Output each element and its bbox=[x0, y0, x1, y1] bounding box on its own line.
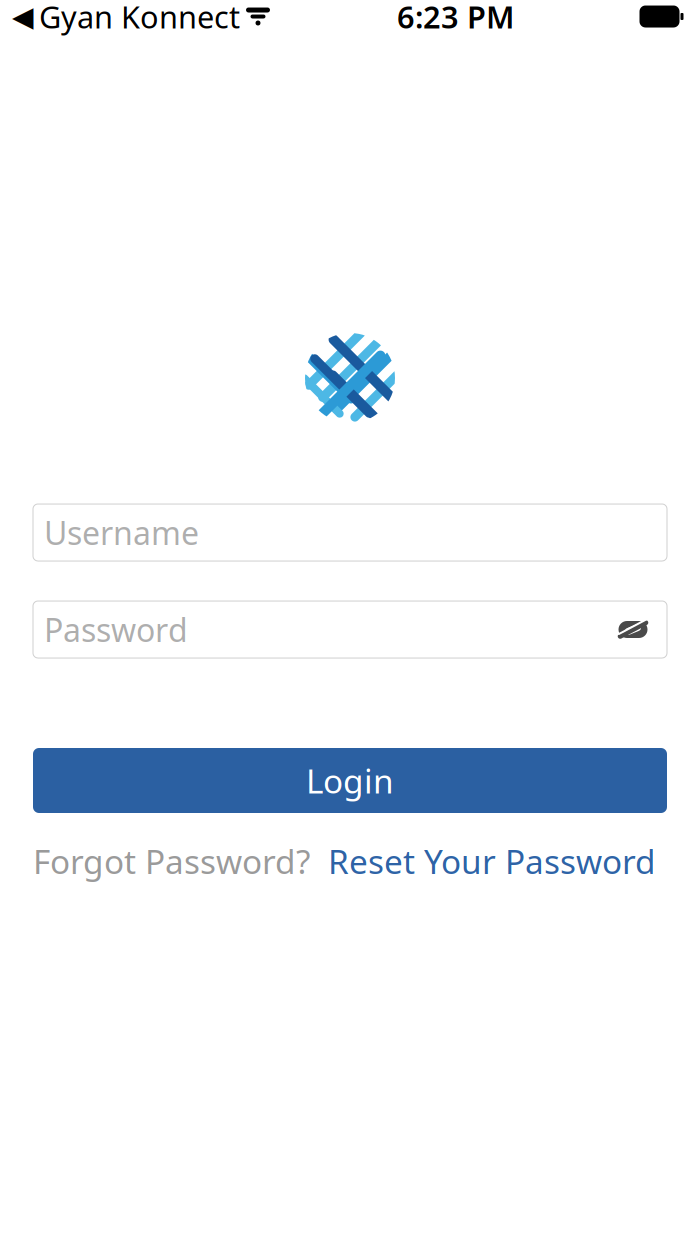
button[interactable]: Username bbox=[33, 504, 667, 561]
staticText: Username bbox=[44, 511, 199, 554]
staticText: Reset Your Password bbox=[328, 839, 656, 883]
button[interactable]: Reset Your Password bbox=[328, 839, 656, 883]
button[interactable]: Password bbox=[33, 601, 667, 658]
staticText: 6:23 PM bbox=[397, 0, 514, 37]
staticText: Password bbox=[44, 608, 188, 651]
staticText: Forgot Password? bbox=[33, 839, 310, 883]
staticText: ◀ bbox=[12, 1, 34, 32]
staticText: Login bbox=[306, 758, 394, 803]
button[interactable]: Show password bbox=[613, 616, 653, 642]
button[interactable]: Login bbox=[33, 748, 667, 813]
staticText: Gyan Konnect bbox=[39, 0, 240, 37]
